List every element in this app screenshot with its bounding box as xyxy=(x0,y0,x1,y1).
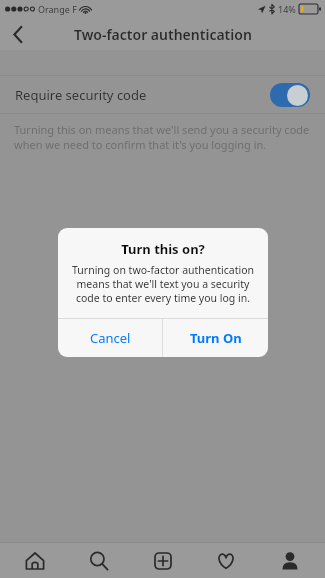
button[interactable]: Back xyxy=(0,18,36,50)
staticText: Orange F xyxy=(38,3,77,15)
staticText: Turn On xyxy=(190,329,242,347)
button[interactable]: Search xyxy=(70,543,128,578)
button[interactable]: Require security code toggle xyxy=(270,83,310,107)
staticText: Require security code xyxy=(15,86,147,104)
button[interactable]: Profile xyxy=(261,543,319,578)
staticText: Turn this on? xyxy=(58,240,268,258)
staticText: Turning this on means that we'll send yo… xyxy=(14,122,311,152)
button[interactable]: Home xyxy=(6,543,64,578)
staticText: Turning on two-factor authentication mea… xyxy=(69,263,257,305)
staticText: Cancel xyxy=(90,329,131,347)
button[interactable]: Turn On xyxy=(163,319,268,357)
staticText: 14% xyxy=(278,3,296,15)
button[interactable]: Require security code xyxy=(0,76,325,113)
button[interactable]: Cancel xyxy=(58,319,162,357)
button[interactable]: Add post xyxy=(134,543,192,578)
button[interactable]: Activity xyxy=(197,543,255,578)
staticText: Two-factor authentication xyxy=(74,25,252,44)
